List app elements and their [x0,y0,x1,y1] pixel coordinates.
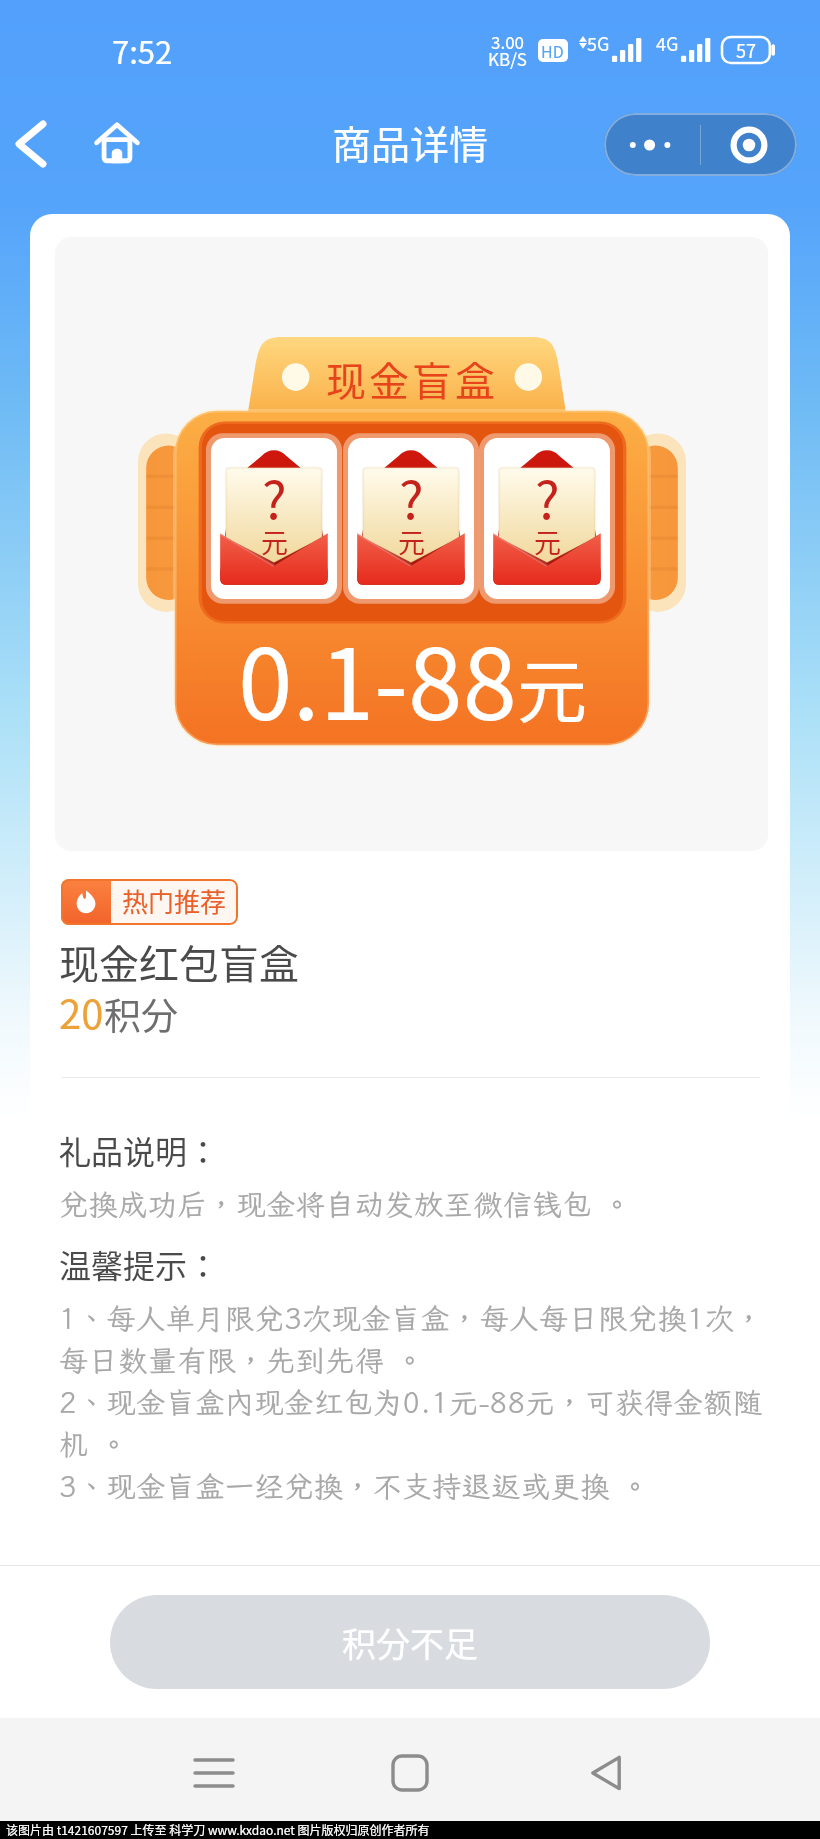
button[interactable]: Back [561,1728,651,1818]
staticText: 礼品说明： [59,1127,220,1173]
staticText: 元 [517,637,587,738]
button[interactable]: Home [88,115,146,173]
staticText: 元 [261,522,288,561]
staticText: 元 [534,522,561,561]
staticText: ? [535,459,560,534]
staticText: 4G [656,30,679,56]
button[interactable]: More options [604,113,700,176]
staticText: HD [541,39,564,62]
staticText: 57 [736,37,756,63]
staticText: 商品详情 [332,114,489,170]
staticText: ? [399,459,424,534]
staticText: 7:52 [112,28,173,73]
staticText: 现金红包盲盒 [59,933,299,991]
button[interactable]: Home [365,1728,455,1818]
button[interactable]: 积分不足 [110,1595,710,1689]
staticText: 该图片由 t1421607597 上传至 科学刀 www.kxdao.net 图… [6,1821,430,1838]
staticText: 积分 [104,987,178,1041]
staticText: 20 [59,983,104,1041]
staticText: 1、每人单月限兑3次现金盲盒，每人每日限兑换1次， 每日数量有限，先到先得 。 … [59,1299,765,1505]
staticText: 温馨提示： [59,1241,220,1287]
button[interactable]: Recent apps [169,1728,259,1818]
staticText: 5G [587,30,610,56]
staticText: 热门推荐 [122,882,227,920]
button[interactable]: Back [2,115,60,173]
button[interactable]: Close mini program [701,113,797,176]
staticText: 元 [398,522,425,561]
staticText: 兑换成功后，现金将自动发放至微信钱包 。 [59,1185,633,1223]
staticText: 3.00 KB/S [488,29,527,71]
staticText: 现金盲盒 [326,350,498,408]
staticText: 积分不足 [342,1618,478,1667]
staticText: 0.1-88 [238,606,517,748]
staticText: ? [262,459,287,534]
